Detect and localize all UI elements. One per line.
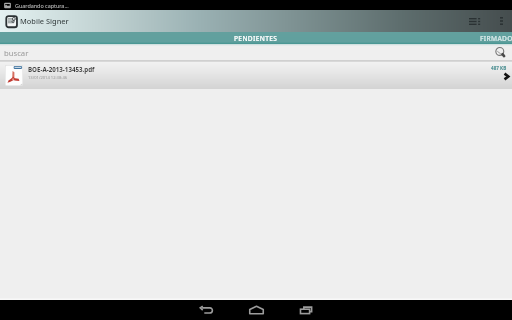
button[interactable]: Recents [287,300,325,320]
button[interactable]: Back [187,300,225,320]
staticText: BOE-A-2013-13453.pdf [28,65,95,73]
staticText: buscar [4,48,29,58]
button[interactable]: Search [494,46,508,60]
button[interactable]: List options [463,10,487,32]
staticText: Mobile Signer [20,16,69,26]
button[interactable]: More options [493,10,509,32]
staticText: FIRMADOS [480,34,512,43]
staticText: 487 KB [491,65,507,71]
staticText: PENDIENTES [234,34,278,43]
button[interactable]: PENDIENTES [196,32,316,44]
staticText: Guardando captura... [15,2,69,9]
button[interactable]: FIRMADOS [438,32,512,44]
button[interactable]: Home [237,300,275,320]
staticText: 13/01/2014 12:38:46 [28,75,68,81]
button[interactable]: BOE-A-2013-13453.pdf [0,62,512,89]
